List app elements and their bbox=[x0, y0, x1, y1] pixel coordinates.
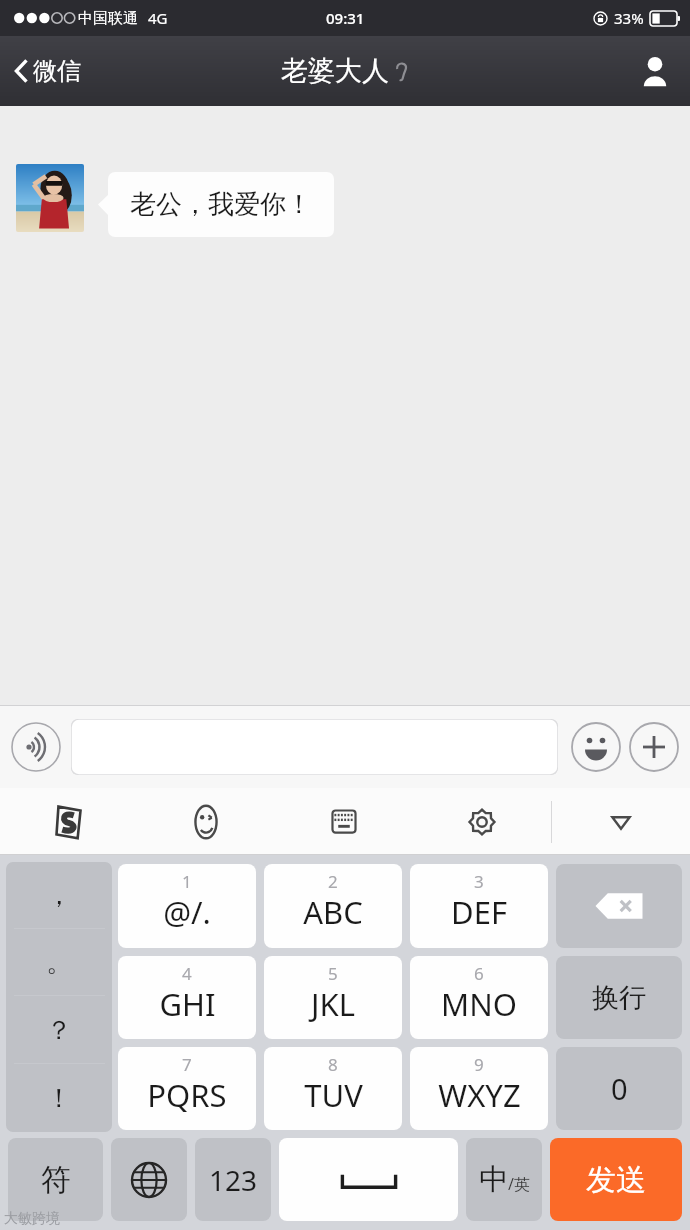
button[interactable]: 0 bbox=[556, 1047, 682, 1130]
staticText: ， bbox=[46, 879, 72, 912]
button[interactable] bbox=[16, 164, 84, 232]
staticText: 8 bbox=[328, 1053, 338, 1076]
staticText: WXYZ bbox=[438, 1074, 521, 1116]
button[interactable]: Hide keyboard bbox=[552, 788, 690, 855]
staticText: GHI bbox=[159, 983, 216, 1025]
staticText: 老公，我爱你！ bbox=[130, 188, 312, 221]
staticText: 9 bbox=[474, 1053, 484, 1076]
staticText: PQRS bbox=[147, 1074, 227, 1116]
staticText: JKL bbox=[311, 983, 355, 1025]
button[interactable]: Backspace bbox=[556, 864, 682, 948]
button[interactable]: ？ bbox=[6, 996, 112, 1064]
staticText: 换行 bbox=[592, 981, 646, 1015]
button[interactable]: 1 bbox=[118, 864, 256, 948]
staticText: 33% bbox=[614, 8, 644, 28]
button[interactable]: ， bbox=[6, 862, 112, 929]
staticText: 09:31 bbox=[326, 8, 365, 28]
staticText: 符 bbox=[41, 1161, 71, 1199]
button[interactable]: 中 bbox=[466, 1138, 542, 1221]
staticText: MNO bbox=[441, 983, 517, 1025]
button[interactable]: 发送 bbox=[550, 1138, 682, 1221]
button[interactable]: 2 bbox=[264, 864, 402, 948]
staticText: 发送 bbox=[586, 1161, 646, 1199]
button[interactable]: Keyboard layout bbox=[275, 788, 413, 855]
staticText: 中国联通 bbox=[78, 9, 138, 28]
staticText: ？ bbox=[46, 1014, 72, 1047]
button[interactable]: 换行 bbox=[556, 956, 682, 1039]
staticText: 中 bbox=[479, 1161, 508, 1198]
staticText: ABC bbox=[303, 891, 363, 933]
staticText: 123 bbox=[209, 1161, 258, 1199]
button[interactable]: More options bbox=[628, 721, 680, 773]
staticText: 0 bbox=[611, 1069, 628, 1108]
button[interactable]: Emoji panel bbox=[137, 788, 275, 855]
staticText: 老婆大人 bbox=[281, 54, 389, 88]
button[interactable]: 4 bbox=[118, 956, 256, 1039]
button[interactable]: Voice input bbox=[10, 721, 62, 773]
other: Backspace bbox=[591, 886, 647, 926]
button[interactable]: 9 bbox=[410, 1047, 548, 1130]
button[interactable]: 123 bbox=[195, 1138, 271, 1221]
staticText: 3 bbox=[474, 870, 484, 893]
staticText: 7 bbox=[182, 1053, 192, 1076]
staticText: 微信 bbox=[33, 56, 81, 86]
staticText: 大敏跨境 bbox=[4, 1210, 60, 1228]
staticText: 4G bbox=[148, 8, 168, 28]
button[interactable]: Space bbox=[279, 1138, 458, 1221]
staticText: /英 bbox=[508, 1173, 530, 1195]
button[interactable]: 8 bbox=[264, 1047, 402, 1130]
button[interactable]: 微信 bbox=[0, 48, 93, 94]
button[interactable]: 老公，我爱你！ bbox=[98, 172, 334, 237]
button[interactable]: Switch language bbox=[111, 1138, 187, 1221]
button[interactable]: 符 bbox=[8, 1138, 103, 1221]
staticText: 5 bbox=[328, 962, 338, 985]
staticText: 1 bbox=[182, 870, 192, 893]
staticText: TUV bbox=[304, 1074, 363, 1116]
button[interactable]: 6 bbox=[410, 956, 548, 1039]
button[interactable]: 3 bbox=[410, 864, 548, 948]
button[interactable]: Contact profile bbox=[620, 44, 690, 98]
staticText: ！ bbox=[46, 1082, 72, 1115]
staticText: 6 bbox=[474, 962, 484, 985]
button[interactable]: Sogou input bbox=[0, 788, 137, 855]
button[interactable]: 。 bbox=[6, 929, 112, 996]
staticText: @/. bbox=[163, 891, 211, 933]
button[interactable]: 7 bbox=[118, 1047, 256, 1130]
staticText: DEF bbox=[451, 891, 507, 933]
staticText: 2 bbox=[328, 870, 338, 893]
button[interactable]: Settings bbox=[413, 788, 551, 855]
button[interactable]: Emoji bbox=[570, 721, 622, 773]
staticText: 。 bbox=[46, 946, 72, 979]
button[interactable] bbox=[71, 719, 558, 775]
button[interactable]: ！ bbox=[6, 1064, 112, 1132]
button[interactable]: 5 bbox=[264, 956, 402, 1039]
staticText: 4 bbox=[182, 962, 192, 985]
